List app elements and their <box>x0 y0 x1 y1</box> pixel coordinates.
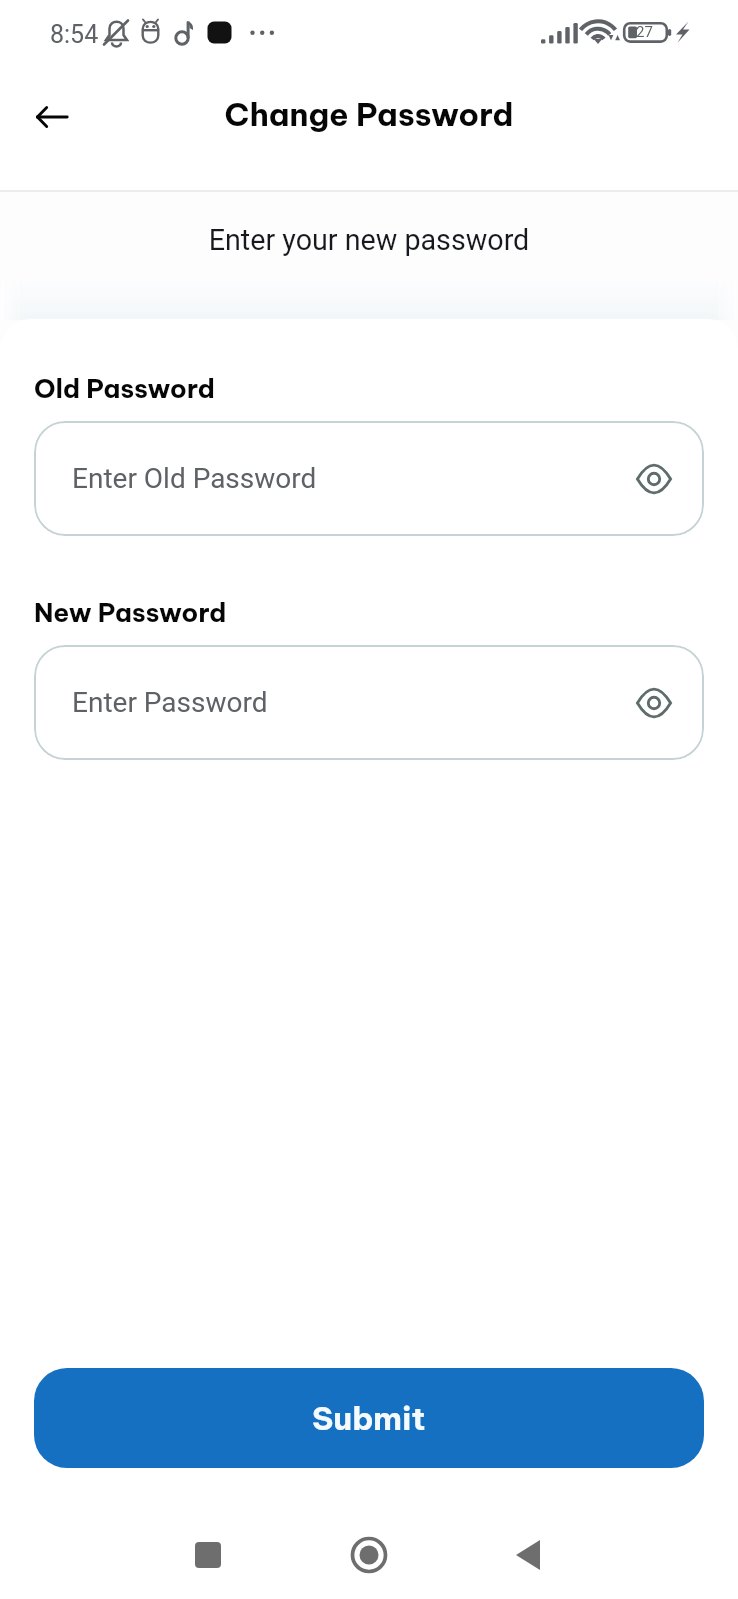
staticText: New Password <box>34 596 227 629</box>
staticText: Enter Old Password <box>72 462 317 495</box>
staticText: Enter Password <box>72 686 268 719</box>
button[interactable]: Back <box>18 83 86 151</box>
button[interactable]: Enter Old Password <box>34 421 704 536</box>
button[interactable]: Back <box>480 1507 576 1599</box>
staticText: Enter your new password <box>0 223 738 257</box>
button[interactable]: Show password <box>630 455 678 503</box>
button[interactable]: Home <box>321 1507 417 1599</box>
staticText: 27 <box>636 23 653 41</box>
button[interactable]: Show password <box>630 679 678 727</box>
button[interactable]: Enter Password <box>34 645 704 760</box>
staticText: Old Password <box>34 372 215 405</box>
button[interactable]: Recent apps <box>160 1507 256 1599</box>
button[interactable]: Submit <box>34 1368 704 1468</box>
staticText: Change Password <box>0 94 738 134</box>
staticText: Submit <box>312 1398 426 1438</box>
staticText: 8:54 <box>50 20 99 49</box>
